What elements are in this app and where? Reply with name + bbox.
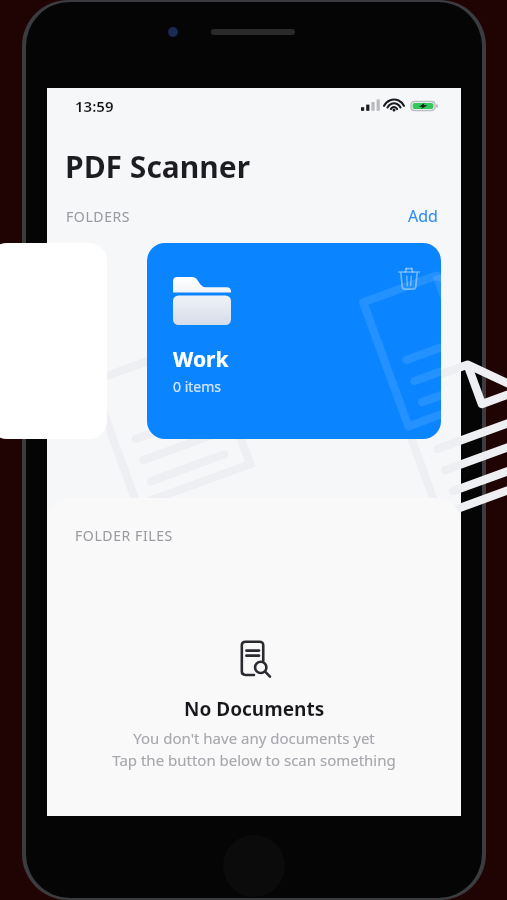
staticText: No Documents [184, 696, 325, 722]
staticText: You don't have any documents yet [133, 728, 375, 748]
staticText: Add [408, 205, 438, 227]
button[interactable] [0, 243, 107, 439]
staticText: 0 items [173, 377, 222, 396]
button[interactable]: Work [147, 243, 441, 439]
button[interactable]: Add [404, 201, 442, 231]
staticText: FOLDERS [66, 207, 131, 226]
staticText: Tap the button below to scan something [112, 750, 396, 770]
staticText: FOLDER FILES [75, 526, 173, 545]
staticText: Work [173, 345, 229, 374]
button[interactable]: Delete folder [395, 265, 423, 293]
staticText: PDF Scanner [65, 146, 251, 187]
staticText: 13:59 [75, 96, 114, 116]
